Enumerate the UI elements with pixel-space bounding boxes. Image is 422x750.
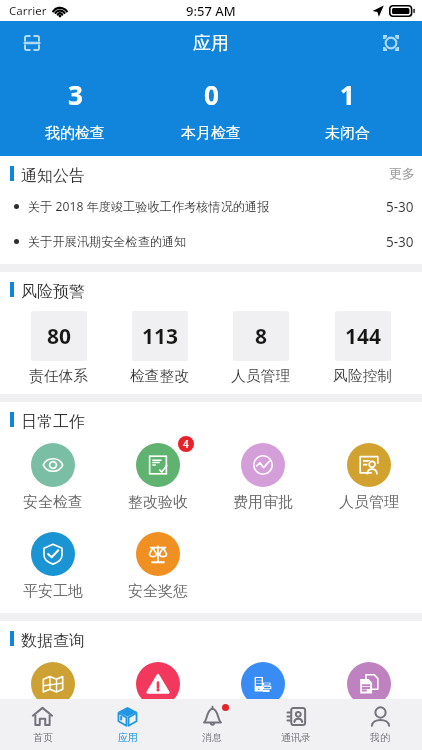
button[interactable]: 数据中心 <box>210 654 316 699</box>
button[interactable]: 4 <box>105 435 210 524</box>
button[interactable]: 113 <box>109 311 210 386</box>
staticText: 8 <box>255 322 268 351</box>
staticText: 3 <box>68 77 83 112</box>
button[interactable]: 安全地图 <box>0 654 105 699</box>
staticText: 通讯录 <box>281 731 311 744</box>
button[interactable]: 费用审批 <box>210 435 316 524</box>
staticText: 5-30 <box>386 233 414 251</box>
staticText: Carrier <box>9 3 47 19</box>
button[interactable]: 我的 <box>338 699 422 750</box>
staticText: 我的检查 <box>45 124 105 143</box>
staticText: 更多 <box>389 165 415 181</box>
staticText: 144 <box>345 322 382 351</box>
button[interactable]: 3 <box>7 65 143 156</box>
button[interactable]: 隐患排查 <box>105 654 210 699</box>
button[interactable]: 档案管理 <box>316 654 422 699</box>
button[interactable]: 8 <box>210 311 312 386</box>
staticText: 消息 <box>202 731 222 744</box>
button[interactable]: 安全奖惩 <box>105 524 210 613</box>
staticText: 风险控制 <box>333 367 393 386</box>
staticText: 9:57 AM <box>186 2 236 20</box>
staticText: 首页 <box>33 731 53 744</box>
staticText: 1 <box>340 77 355 112</box>
staticText: 人员管理 <box>231 367 291 386</box>
button[interactable]: 关于开展汛期安全检查的通知 <box>0 224 422 259</box>
staticText: 日常工作 <box>21 412 85 432</box>
staticText: 平安工地 <box>23 582 83 601</box>
staticText: 本月检查 <box>181 124 241 143</box>
button[interactable]: 更多 <box>0 156 422 189</box>
button[interactable]: 0 <box>143 65 279 156</box>
button[interactable]: 人员管理 <box>316 435 422 524</box>
button[interactable]: 1 <box>279 65 415 156</box>
staticText: 4 <box>183 437 189 451</box>
button[interactable]: 应用 <box>85 699 170 750</box>
staticText: 数据查询 <box>21 631 85 651</box>
button[interactable]: 关于 2018 年度竣工验收工作考核情况的通报 <box>0 189 422 224</box>
staticText: 检查整改 <box>130 367 190 386</box>
staticText: 安全检查 <box>23 493 83 512</box>
button[interactable]: 消息 <box>170 699 254 750</box>
button[interactable]: 首页 <box>0 699 85 750</box>
staticText: 80 <box>47 322 72 351</box>
button[interactable]: 平安工地 <box>0 524 105 613</box>
staticText: 整改验收 <box>128 493 188 512</box>
staticText: 风险预警 <box>21 282 85 302</box>
staticText: 0 <box>204 77 219 112</box>
staticText: 通知公告 <box>21 166 85 186</box>
button[interactable]: 80 <box>8 311 109 386</box>
staticText: 关于开展汛期安全检查的通知 <box>28 234 386 249</box>
staticText: 关于 2018 年度竣工验收工作考核情况的通报 <box>28 198 386 215</box>
button[interactable]: 安全检查 <box>0 435 105 524</box>
staticText: 我的 <box>370 731 390 744</box>
staticText: 5-30 <box>386 198 414 216</box>
staticText: 未闭合 <box>325 124 370 143</box>
staticText: 安全奖惩 <box>128 582 188 601</box>
staticText: 113 <box>142 322 179 351</box>
button[interactable]: 144 <box>312 311 414 386</box>
button[interactable]: 通讯录 <box>254 699 338 750</box>
staticText: 责任体系 <box>29 367 89 386</box>
staticText: 应用 <box>118 731 138 744</box>
staticText: 费用审批 <box>233 493 293 512</box>
button[interactable]: Scan QR code <box>14 25 50 61</box>
staticText: 应用 <box>193 32 229 55</box>
staticText: 人员管理 <box>339 493 399 512</box>
button[interactable]: Search <box>373 25 409 61</box>
